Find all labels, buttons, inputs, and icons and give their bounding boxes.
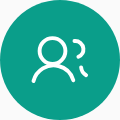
button[interactable]: Contacts	[0, 0, 120, 120]
